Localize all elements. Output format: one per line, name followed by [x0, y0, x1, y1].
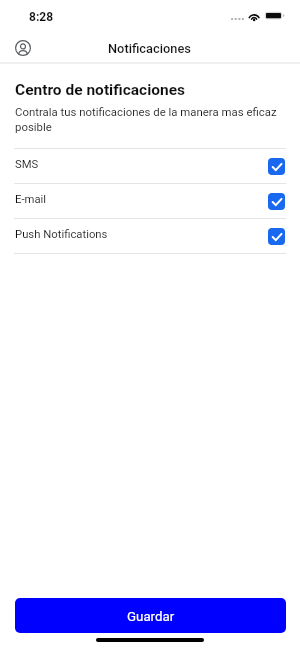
staticText: E-mail [15, 193, 47, 206]
staticText: 8:28 [29, 10, 54, 24]
button[interactable]: Toggle SMS [268, 158, 285, 175]
button[interactable]: Push Notifications [0, 219, 300, 253]
button[interactable]: Toggle E-mail [268, 193, 285, 210]
staticText: Centro de notificaciones [15, 81, 186, 99]
button[interactable]: Toggle Push Notifications [268, 228, 285, 245]
button[interactable]: Account [11, 36, 35, 60]
button[interactable]: E-mail [0, 184, 300, 218]
button[interactable]: Guardar [15, 598, 286, 633]
staticText: Push Notifications [15, 228, 108, 241]
staticText: SMS [15, 158, 39, 171]
staticText: Notificaciones [108, 41, 191, 56]
staticText: Guardar [127, 609, 175, 625]
staticText: Contrala tus notificaciones de la manera… [15, 105, 283, 134]
button[interactable]: SMS [0, 149, 300, 183]
